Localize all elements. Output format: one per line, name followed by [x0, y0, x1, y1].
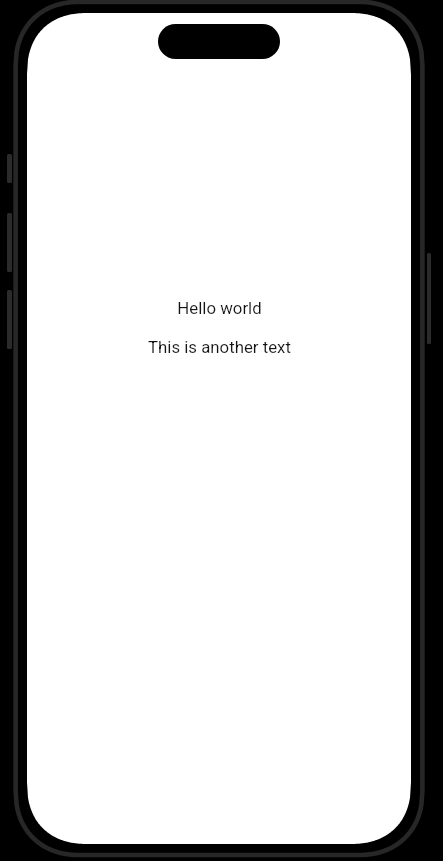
button[interactable]: Silent switch: [7, 154, 12, 183]
staticText: This is another text: [148, 337, 291, 357]
staticText: Hello world: [177, 298, 262, 318]
